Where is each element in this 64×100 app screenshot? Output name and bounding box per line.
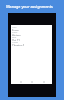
button[interactable]: Title <box>11 26 52 31</box>
staticText: History <box>12 34 21 36</box>
staticText: Due <box>12 36 17 39</box>
staticText: Class <box>12 31 18 34</box>
button[interactable]: Recents <box>41 79 46 84</box>
button[interactable]: Due <box>11 36 52 41</box>
button[interactable]: Back <box>18 79 23 84</box>
button[interactable]: Notes <box>11 41 52 46</box>
staticText: Essay <box>12 29 19 31</box>
staticText: Oct 12 <box>12 39 20 41</box>
staticText: Chapter 4 <box>12 44 24 46</box>
button[interactable]: Home <box>29 79 34 84</box>
staticText: Title <box>12 26 17 29</box>
button[interactable]: Class <box>11 31 52 36</box>
staticText: Manage your assignments <box>6 4 53 9</box>
staticText: Notes <box>12 41 19 44</box>
